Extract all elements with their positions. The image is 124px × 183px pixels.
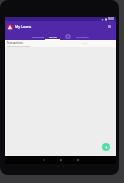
button[interactable]: OVERVIEW [30, 32, 45, 40]
staticText: My Loans [15, 24, 32, 29]
button[interactable]: Recents [74, 156, 82, 164]
staticText: LOANS [49, 35, 57, 38]
button[interactable]: Back [40, 156, 48, 164]
staticText: Last 30 days of activity [7, 45, 31, 47]
staticText: 9:30 [108, 17, 114, 21]
staticText: PAYMENTS [76, 35, 89, 38]
button[interactable]: PAYMENTS [75, 32, 90, 40]
button[interactable]: More options [106, 23, 113, 30]
button[interactable] [60, 32, 75, 40]
button[interactable]: Home [57, 156, 65, 164]
staticText: SORT [82, 42, 88, 45]
button[interactable]: Add payment [102, 143, 110, 151]
button[interactable]: LOANS [45, 32, 60, 40]
staticText: OVERVIEW [32, 35, 44, 38]
staticText: Transactions [7, 41, 23, 45]
